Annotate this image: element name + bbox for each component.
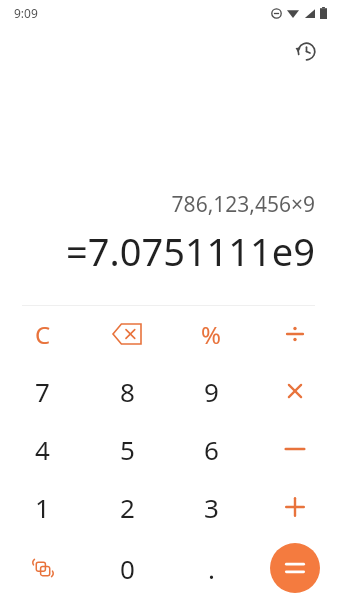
staticText: 5 [120,432,135,467]
staticText: 786,123,456×9 [171,190,315,219]
button[interactable]: Decimal point [169,536,253,600]
button[interactable]: Minus [253,420,337,478]
button[interactable]: C [0,306,85,362]
button[interactable]: Plus [253,478,337,536]
button[interactable]: 0 [85,536,169,600]
button[interactable]: Backspace [85,306,169,362]
button[interactable]: 9 [169,362,253,420]
button[interactable]: Divide [253,306,337,362]
staticText: 1 [35,490,50,525]
button[interactable]: 5 [85,420,169,478]
staticText: 7 [35,374,50,409]
staticText: 3 [204,490,219,525]
staticText: % [201,318,221,351]
button[interactable]: 8 [85,362,169,420]
staticText: 4 [35,432,50,467]
button[interactable]: 2 [85,478,169,536]
button[interactable]: Unit converter [0,536,85,600]
staticText: 9:09 [14,5,38,21]
button[interactable]: Equals [253,536,337,600]
button[interactable]: 3 [169,478,253,536]
staticText: C [35,318,51,351]
staticText: 2 [120,490,135,525]
button[interactable]: 1 [0,478,85,536]
button[interactable]: 7 [0,362,85,420]
staticText: 6 [204,432,219,467]
staticText: 8 [120,374,135,409]
staticText: 9 [204,374,219,409]
button[interactable]: Multiply [253,362,337,420]
button[interactable]: 4 [0,420,85,478]
staticText: . [208,551,215,586]
button[interactable]: 6 [169,420,253,478]
button[interactable]: History [289,34,323,68]
button[interactable]: Percent [169,306,253,362]
staticText: =7.0751111e9 [66,225,315,277]
staticText: 0 [120,551,135,586]
